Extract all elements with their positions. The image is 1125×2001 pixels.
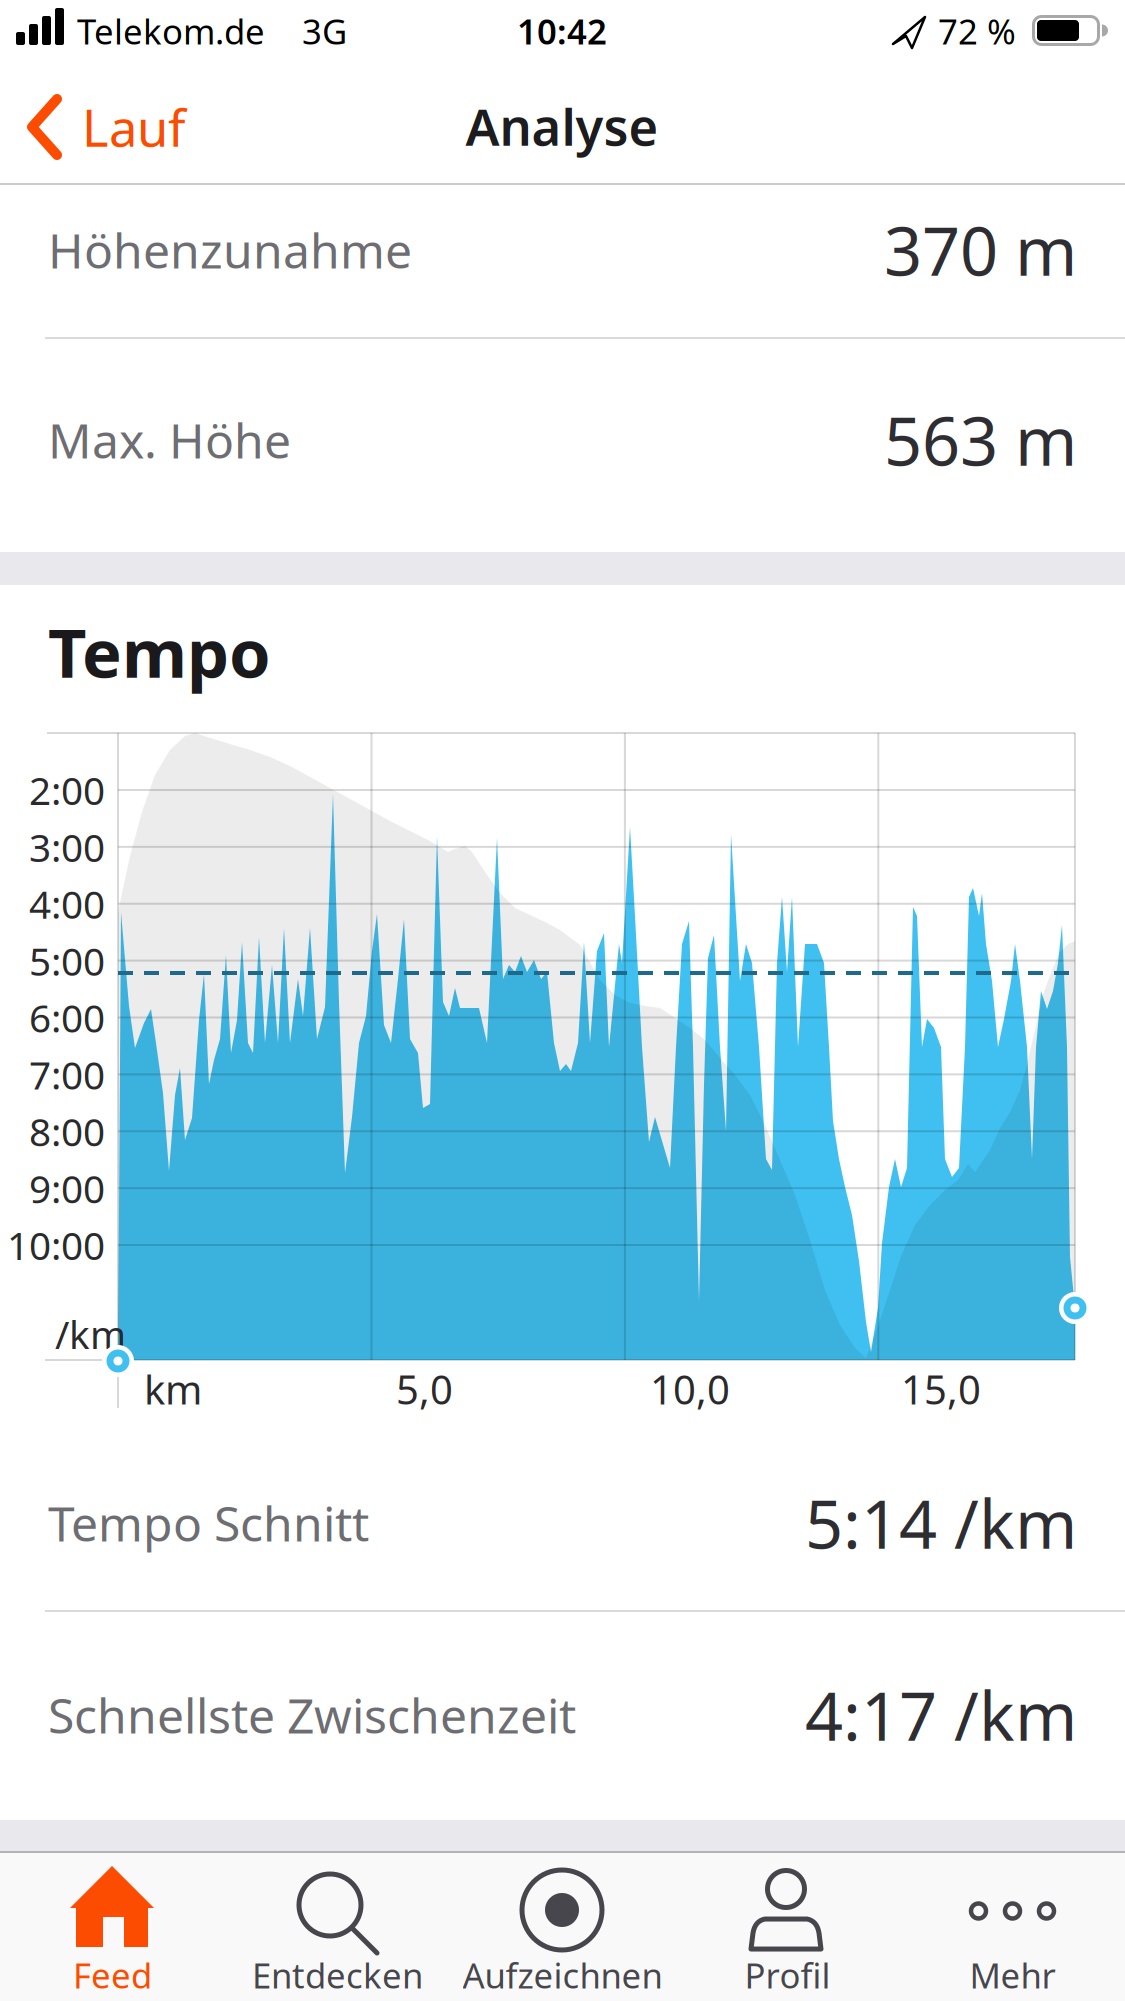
staticText: Mehr xyxy=(969,1952,1055,1998)
staticText: Telekom.de xyxy=(77,8,265,54)
staticText: Entdecken xyxy=(252,1952,423,1998)
staticText: 563 m xyxy=(884,396,1077,484)
staticText: 4:00 xyxy=(29,878,105,929)
button[interactable]: Aufzeichnen xyxy=(450,1853,675,2001)
staticText: 7:00 xyxy=(29,1049,105,1100)
staticText: 9:00 xyxy=(29,1162,105,1214)
staticText: 10:00 xyxy=(7,1219,105,1271)
staticText: 2:00 xyxy=(29,764,105,816)
button[interactable]: Zurück zu Lauf xyxy=(0,60,230,185)
staticText: 15,0 xyxy=(901,1362,981,1415)
staticText: 10:42 xyxy=(517,8,607,54)
staticText: 5,0 xyxy=(396,1362,453,1415)
staticText: 5:00 xyxy=(29,935,105,986)
staticText: 6:00 xyxy=(29,992,105,1043)
staticText: Schnellste Zwischenzeit xyxy=(48,1683,576,1747)
button[interactable]: Mehr xyxy=(900,1853,1125,2001)
button[interactable]: Profil xyxy=(675,1853,900,2001)
staticText: Analyse xyxy=(465,92,658,160)
staticText: 5:14 /km xyxy=(805,1479,1077,1567)
staticText: /km xyxy=(55,1308,126,1360)
staticText: Max. Höhe xyxy=(48,408,291,472)
staticText: Feed xyxy=(73,1952,152,1998)
staticText: Tempo Schnitt xyxy=(48,1491,369,1555)
staticText: Aufzeichnen xyxy=(462,1952,662,1998)
staticText: Lauf xyxy=(82,93,185,161)
staticText: Höhenzunahme xyxy=(48,218,412,282)
staticText: Profil xyxy=(744,1952,830,1998)
button[interactable]: Feed xyxy=(0,1853,225,2001)
staticText: 4:17 /km xyxy=(805,1671,1077,1759)
staticText: 72 % xyxy=(938,8,1016,54)
staticText: 3:00 xyxy=(29,821,105,872)
staticText: Tempo xyxy=(48,608,271,696)
staticText: 3G xyxy=(302,8,347,54)
staticText: 10,0 xyxy=(650,1362,730,1415)
staticText: 370 m xyxy=(884,206,1077,294)
button[interactable]: Entdecken xyxy=(225,1853,450,2001)
staticText: km xyxy=(144,1362,202,1415)
staticText: 8:00 xyxy=(29,1106,105,1157)
